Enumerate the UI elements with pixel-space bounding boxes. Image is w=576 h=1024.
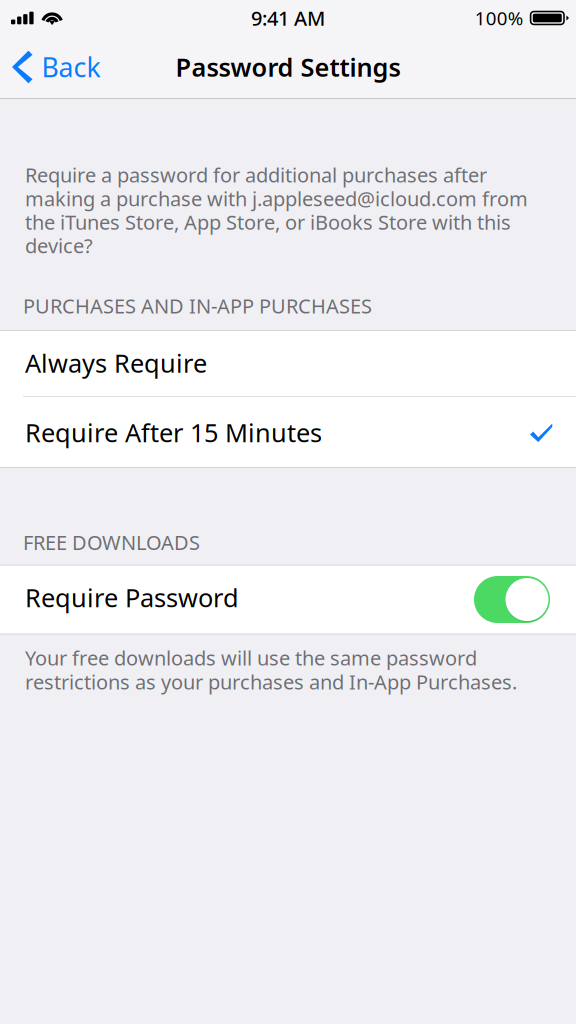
staticText: PURCHASES AND IN-APP PURCHASES	[23, 292, 372, 319]
staticText: Require Password	[25, 581, 239, 614]
staticText: Always Require	[25, 346, 207, 380]
staticText: Back	[41, 49, 100, 85]
staticText: 9:41 AM	[251, 5, 325, 31]
button[interactable]: Require After 15 Minutes	[0, 397, 576, 468]
staticText: restrictions as your purchases and In-Ap…	[25, 668, 517, 695]
staticText: Require a password for additional purcha…	[25, 161, 487, 188]
staticText: 100%	[475, 6, 524, 30]
staticText: Your free downloads will use the same pa…	[25, 644, 477, 671]
staticText: Password Settings	[175, 50, 400, 84]
staticText: Require After 15 Minutes	[25, 416, 322, 449]
staticText: FREE DOWNLOADS	[23, 529, 200, 556]
staticText: device?	[25, 232, 93, 259]
button[interactable]: Back	[0, 36, 114, 98]
button[interactable]: Always Require	[0, 330, 576, 396]
staticText: the iTunes Store, App Store, or iBooks S…	[25, 209, 511, 235]
staticText: making a purchase with j.appleseed@iclou…	[25, 185, 528, 212]
